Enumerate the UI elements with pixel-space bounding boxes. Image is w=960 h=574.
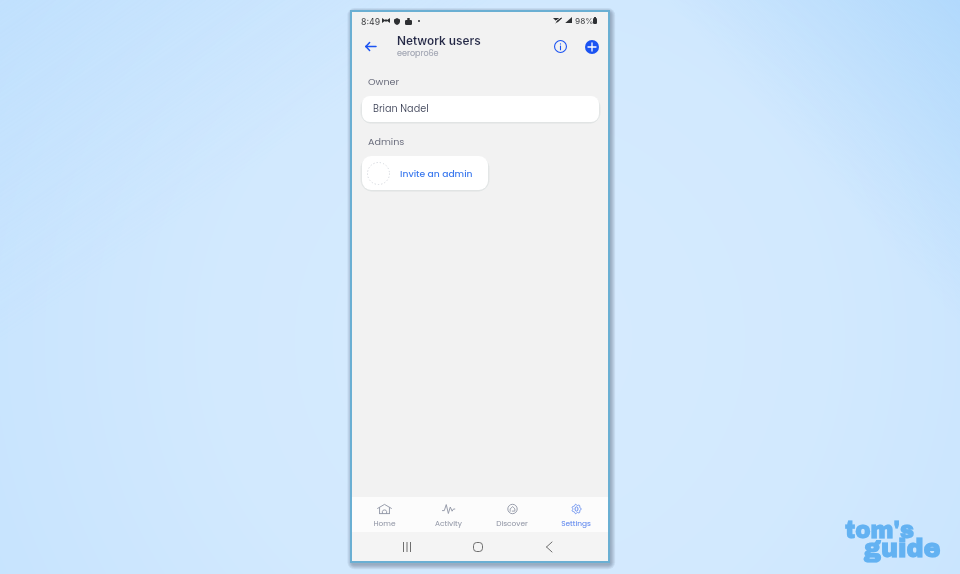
button[interactable]: Brian Nadel xyxy=(362,96,599,122)
staticText: Owner xyxy=(368,75,400,88)
button[interactable]: Back xyxy=(359,35,381,57)
staticText: Home xyxy=(373,518,396,528)
staticText: Settings xyxy=(561,518,591,528)
button[interactable]: Activity xyxy=(416,497,480,532)
button[interactable]: Invite an admin xyxy=(362,156,488,190)
staticText: Activity xyxy=(435,518,462,528)
staticText: tom's xyxy=(845,518,914,543)
button[interactable]: Settings xyxy=(544,497,608,532)
button[interactable]: Recents xyxy=(393,539,421,554)
staticText: Discover xyxy=(496,518,528,528)
staticText: Brian Nadel xyxy=(373,102,429,116)
button[interactable]: Add user xyxy=(585,40,599,54)
button[interactable]: Back xyxy=(535,539,563,554)
staticText: 98% xyxy=(575,16,594,26)
staticText: guide xyxy=(864,535,941,563)
button[interactable]: Info xyxy=(550,36,571,57)
button[interactable]: Home xyxy=(352,497,416,532)
button[interactable]: Home xyxy=(464,539,492,554)
staticText: 8:49 xyxy=(361,17,381,27)
staticText: eeropro6e xyxy=(397,48,439,59)
staticText: Invite an admin xyxy=(400,167,473,180)
staticText: Network users xyxy=(397,34,481,48)
button[interactable]: Discover xyxy=(480,497,544,532)
staticText: Admins xyxy=(368,135,405,148)
